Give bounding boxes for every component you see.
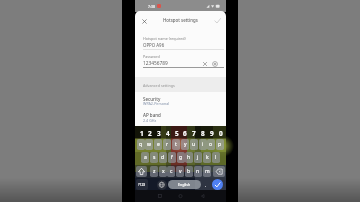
button[interactable] [211, 60, 219, 68]
staticText: b [187, 168, 191, 175]
staticText: Advanced settings [143, 83, 175, 88]
staticText: AP band [143, 112, 161, 118]
button[interactable]: p [216, 139, 224, 150]
staticText: 2 [148, 129, 152, 138]
button[interactable] [212, 15, 223, 26]
button[interactable]: l [212, 152, 220, 163]
staticText: Security [143, 96, 161, 102]
staticText: 4 [166, 129, 170, 138]
staticText: h [187, 154, 191, 161]
staticText: k [206, 154, 209, 161]
staticText: Password [143, 54, 160, 59]
staticText: s [153, 154, 156, 161]
staticText: t [175, 141, 177, 148]
staticText: . [205, 182, 207, 188]
button[interactable]: k [203, 152, 211, 163]
button[interactable]: t [172, 139, 180, 150]
button[interactable]: s [150, 152, 158, 163]
staticText: o [209, 141, 213, 148]
button[interactable]: 3 [154, 128, 163, 138]
staticText: 9 [210, 129, 214, 138]
button[interactable]: ?123 [136, 179, 148, 190]
staticText: p [218, 141, 222, 148]
button[interactable]: 9 [207, 128, 216, 138]
button[interactable]: m [203, 166, 211, 177]
button[interactable] [140, 17, 149, 26]
button[interactable]: 8 [198, 128, 207, 138]
button[interactable]: x [159, 166, 167, 177]
staticText: x [162, 168, 165, 175]
staticText: ?123 [138, 182, 146, 187]
button[interactable]: 2 [145, 128, 154, 138]
staticText: v [179, 168, 182, 175]
staticText: i [202, 141, 204, 148]
button[interactable]: w [145, 139, 153, 150]
staticText: English [178, 182, 191, 187]
button[interactable]: g [177, 152, 185, 163]
staticText: 6 [183, 129, 187, 138]
staticText: 5 [175, 129, 179, 138]
button[interactable] [213, 166, 225, 177]
button[interactable]: n [194, 166, 202, 177]
button[interactable]: 6 [180, 128, 189, 138]
button[interactable]: v [176, 166, 184, 177]
button[interactable]: h [185, 152, 193, 163]
staticText: 0 [219, 129, 223, 138]
staticText: 7:38 [148, 4, 155, 9]
button[interactable]: d [159, 152, 167, 163]
staticText: r [166, 141, 169, 148]
staticText: l [215, 154, 217, 161]
staticText: d [161, 154, 165, 161]
button[interactable]: r [163, 139, 171, 150]
staticText: u [192, 141, 196, 148]
staticText: w [147, 141, 151, 148]
button[interactable]: o [207, 139, 215, 150]
staticText: e [157, 141, 160, 148]
button[interactable]: b [185, 166, 193, 177]
staticText: q [139, 141, 143, 148]
button[interactable]: 5 [172, 128, 181, 138]
staticText: z [153, 168, 156, 175]
button[interactable]: a [141, 152, 149, 163]
staticText: 8 [201, 129, 205, 138]
button[interactable]: AP band [135, 108, 226, 124]
button[interactable]: z [150, 166, 158, 177]
staticText: OPPO A96 [143, 42, 165, 48]
staticText: m [205, 168, 210, 175]
staticText: y [184, 141, 187, 148]
button[interactable]: q [137, 139, 145, 150]
staticText: 2.4 GHz [143, 118, 157, 123]
staticText: c [170, 168, 173, 175]
staticText: 1 [140, 129, 144, 138]
staticText: 123456789 [143, 60, 168, 67]
button[interactable] [212, 179, 223, 190]
button[interactable] [201, 60, 209, 68]
button[interactable]: 0 [216, 128, 225, 138]
staticText: Hotspot settings [163, 17, 198, 23]
button[interactable]: e [154, 139, 162, 150]
button[interactable]: i [199, 139, 207, 150]
staticText: a [144, 154, 147, 161]
button[interactable] [136, 166, 147, 177]
button[interactable] [157, 180, 167, 190]
button[interactable]: f [168, 152, 176, 163]
staticText: j [197, 154, 199, 161]
button[interactable]: j [194, 152, 202, 163]
button[interactable]: 7 [189, 128, 198, 138]
button[interactable]: . [202, 180, 210, 189]
button[interactable]: 4 [163, 128, 172, 138]
staticText: 7 [192, 129, 196, 138]
button[interactable]: Security [135, 92, 226, 108]
staticText: f [171, 154, 173, 161]
button[interactable]: u [190, 139, 198, 150]
button[interactable]: y [181, 139, 189, 150]
staticText: g [179, 154, 183, 161]
staticText: 3 [157, 129, 161, 138]
button[interactable]: c [167, 166, 175, 177]
staticText: Hotspot name (required) [143, 36, 186, 41]
button[interactable]: English [168, 180, 201, 189]
button[interactable]: 1 [137, 128, 146, 138]
staticText: WPA2-Personal [143, 101, 170, 106]
staticText: n [196, 168, 200, 175]
